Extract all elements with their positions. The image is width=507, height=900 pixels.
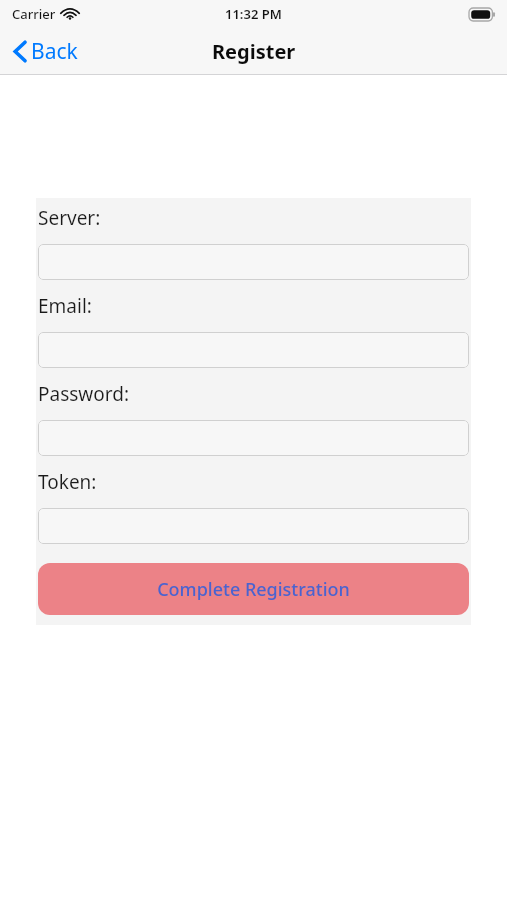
staticText: Server: <box>38 205 101 231</box>
staticText: Register <box>212 38 296 65</box>
button[interactable] <box>38 420 469 456</box>
button[interactable] <box>38 508 469 544</box>
staticText: Carrier <box>12 5 56 23</box>
staticText: Password: <box>38 381 130 407</box>
button[interactable]: Back <box>0 28 88 75</box>
staticText: Token: <box>38 469 97 495</box>
button[interactable] <box>38 244 469 280</box>
staticText: 11:32 PM <box>225 5 282 23</box>
button[interactable] <box>38 332 469 368</box>
staticText: Email: <box>38 293 92 319</box>
staticText: Complete Registration <box>157 577 350 602</box>
staticText: Back <box>31 37 78 66</box>
button[interactable]: Complete Registration <box>38 563 469 615</box>
